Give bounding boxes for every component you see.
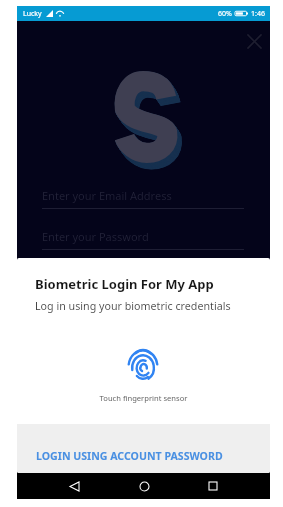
staticText: Biometric Login For My App [35,275,214,293]
button[interactable]: Close [240,27,268,55]
button[interactable]: LOGIN USING ACCOUNT PASSWORD [17,424,270,473]
staticText: 60% [218,9,232,19]
button[interactable]: Back [61,473,87,499]
staticText: Enter your Email Address [42,188,172,203]
button[interactable]: Recents [200,473,226,499]
staticText: Enter your Password [42,229,149,244]
staticText: Lucky [23,9,42,19]
staticText: LOGIN USING ACCOUNT PASSWORD [36,449,223,463]
button[interactable]: Home [131,473,157,499]
staticText: Log in using your biometric credentials [35,299,231,314]
staticText: 1:46 [251,9,265,19]
staticText: Touch fingerprint sensor [17,393,270,403]
